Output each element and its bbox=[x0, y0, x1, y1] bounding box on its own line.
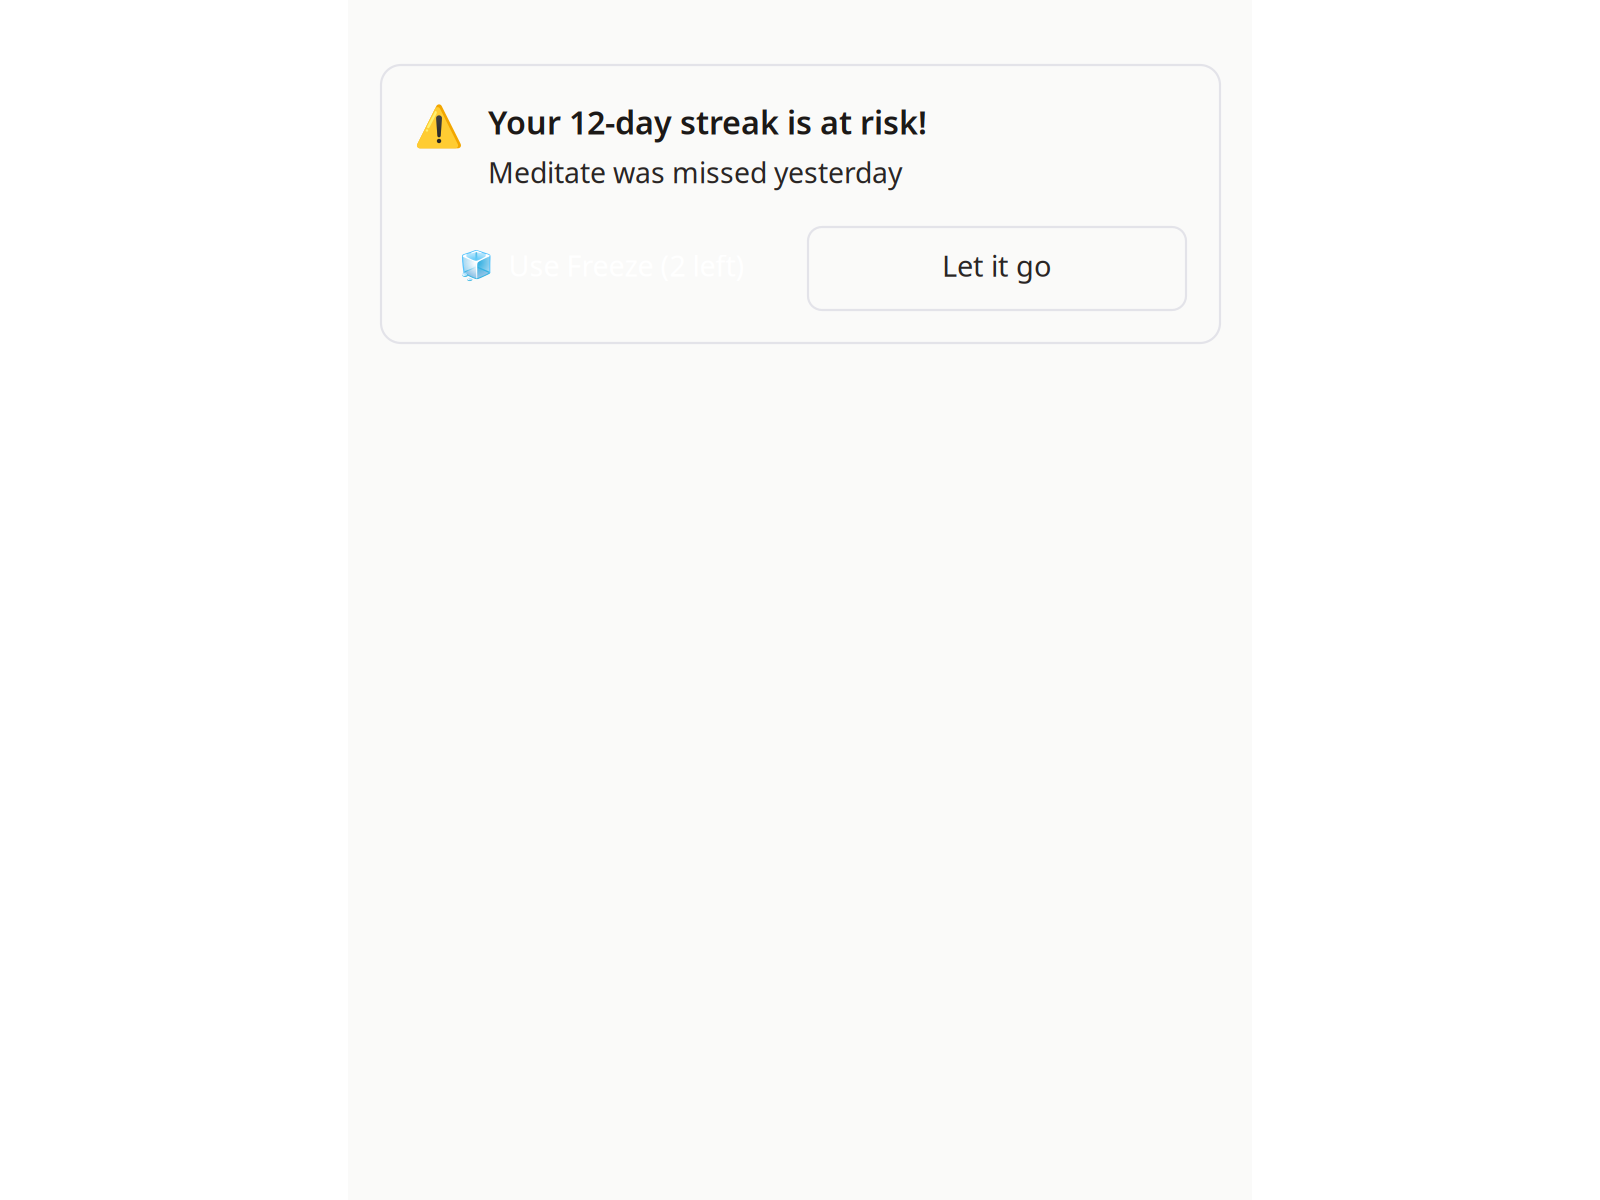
staticText: Let it go bbox=[942, 246, 1052, 285]
staticText: Your 12-day streak is at risk! bbox=[488, 100, 927, 144]
staticText: Meditate was missed yesterday bbox=[488, 153, 902, 192]
button[interactable]: Use Freeze (2 left) bbox=[414, 227, 792, 310]
staticText: 🧊 bbox=[458, 249, 493, 281]
button[interactable]: Let it go bbox=[808, 227, 1186, 310]
staticText: ⚠️ bbox=[414, 103, 464, 149]
